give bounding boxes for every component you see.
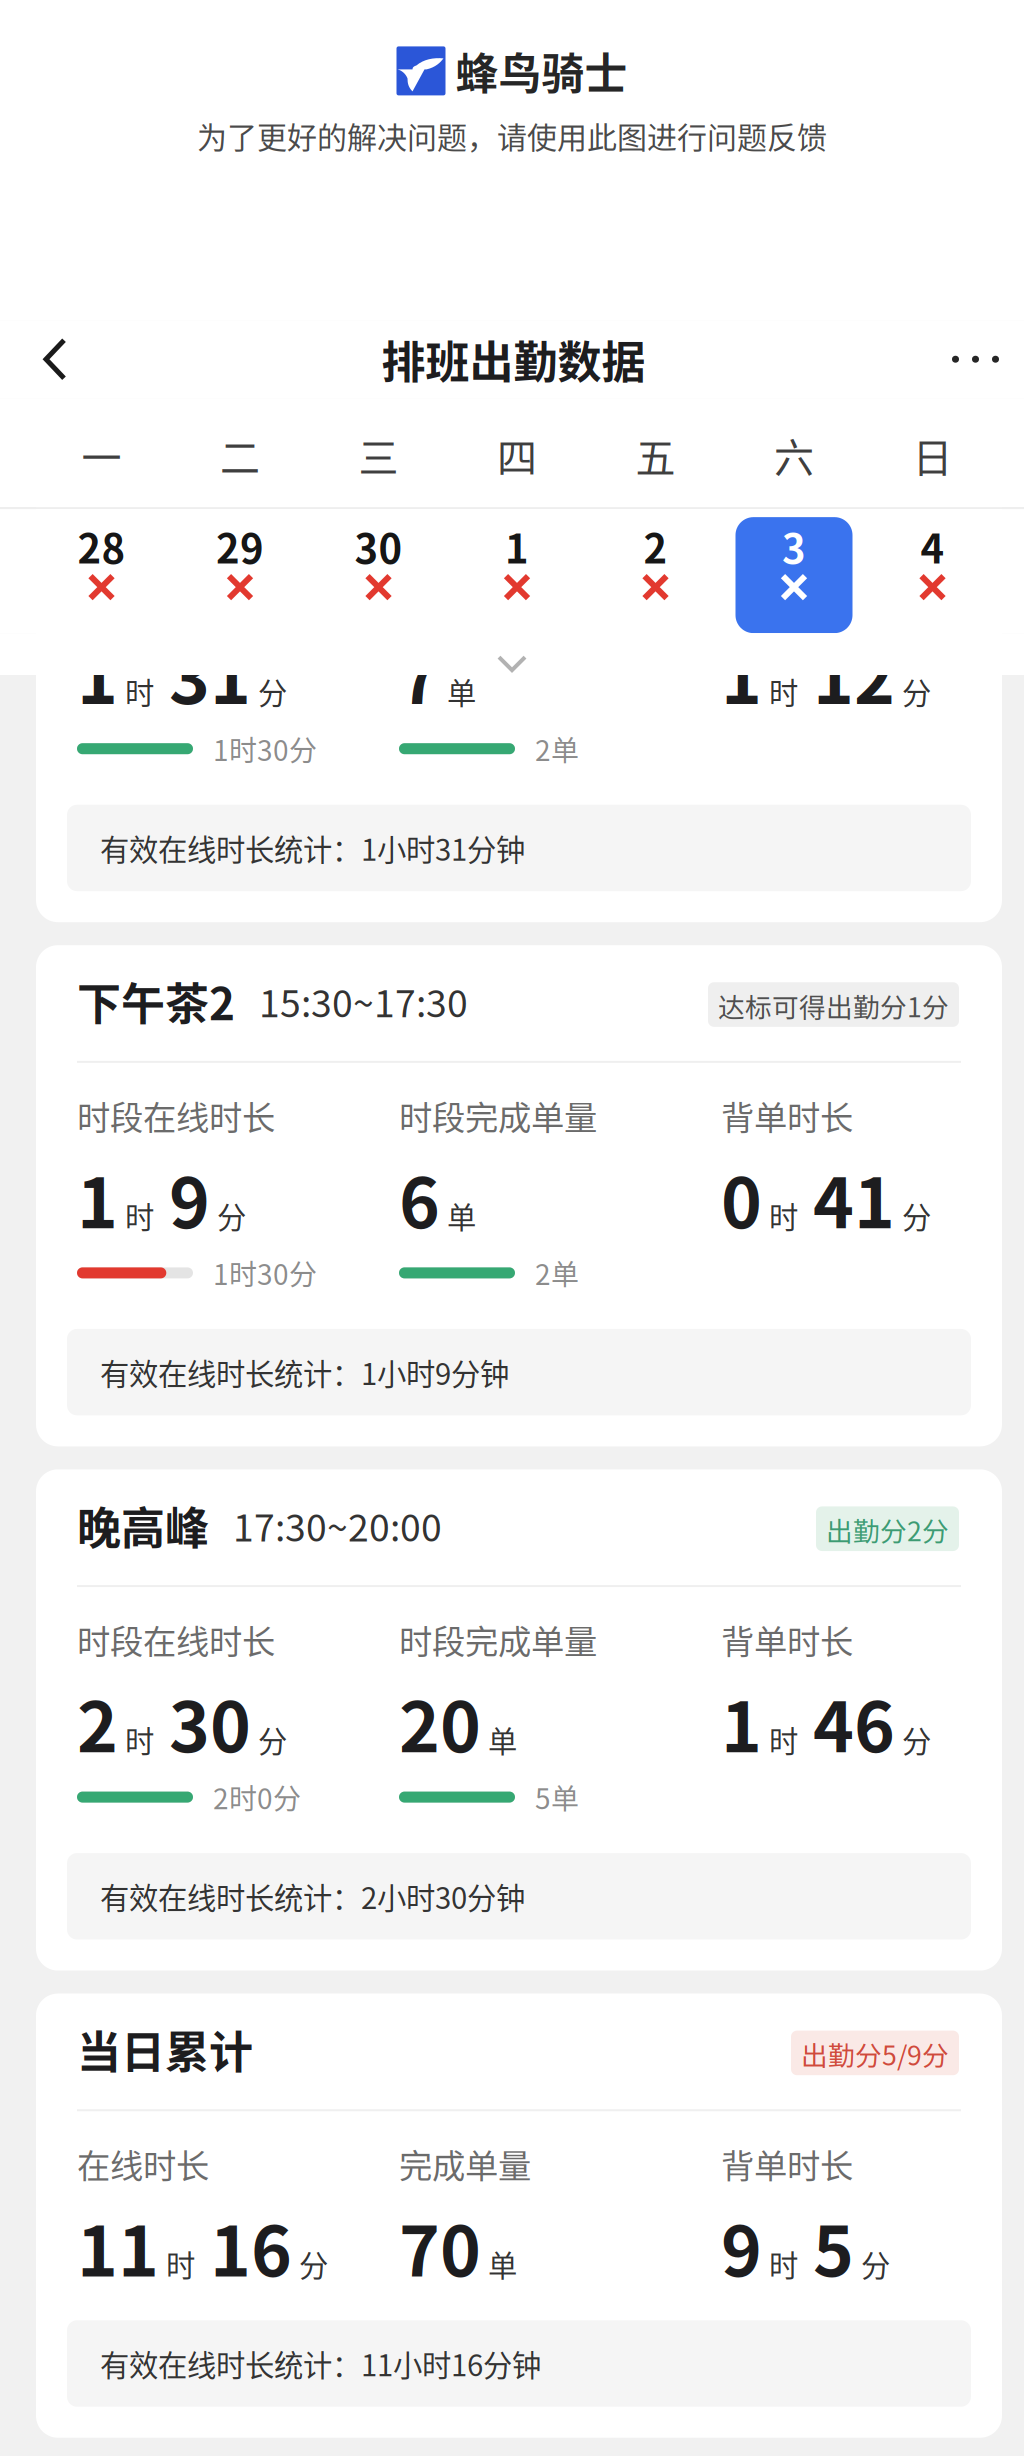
staticText: 15:30~17:30 (235, 974, 468, 1028)
staticText: 排班出勤数据 (381, 327, 645, 391)
staticText: 晚高峰 (77, 1493, 209, 1557)
staticText: 有效在线时长统计：1小时9分钟 (100, 1351, 509, 1393)
staticText: 07:00~09:00 (209, 450, 442, 504)
staticText: 20 (399, 1672, 481, 1772)
staticText: 29 (216, 517, 264, 575)
staticText: 17:30~20:00 (209, 1498, 442, 1552)
button[interactable]: Back (0, 320, 96, 398)
staticText: 为了更好的解决问题，请使用此图进行问题反馈 (197, 114, 827, 157)
staticText: 7 (399, 623, 440, 724)
staticText: 四 (497, 426, 537, 484)
staticText: 2 (77, 1672, 118, 1772)
staticText: 时段完成单量 (399, 567, 597, 615)
staticText: 6 (399, 1148, 440, 1248)
staticText: 三 (358, 426, 398, 484)
staticText: 时段在线时长 (77, 567, 275, 615)
staticText: 1时30分 (213, 1253, 317, 1293)
staticText: 分 (861, 2242, 890, 2285)
button[interactable]: 3 (735, 517, 852, 633)
staticText: 单 (488, 1718, 517, 1761)
button[interactable]: 4 (874, 517, 991, 633)
staticText: 出勤分1分 (826, 462, 949, 501)
staticText: 时 (125, 1194, 154, 1237)
staticText: 分 (902, 670, 931, 712)
staticText: 分 (258, 670, 287, 712)
staticText: 时段在线时长 (77, 1091, 275, 1140)
staticText: 2 (643, 517, 667, 575)
staticText: 1时30分 (213, 728, 317, 769)
button[interactable]: Expand calendar (0, 633, 1024, 676)
staticText: 时 (769, 1718, 798, 1761)
staticText: 时 (125, 1718, 154, 1761)
staticText: 单 (447, 670, 476, 712)
staticText: 时 (769, 1194, 798, 1237)
staticText: 分 (217, 1194, 246, 1237)
button[interactable]: 2 (597, 517, 714, 633)
staticText: 当日累计 (77, 2018, 253, 2081)
staticText: 时段完成单量 (399, 1091, 597, 1140)
staticText: 46 (813, 1672, 895, 1772)
staticText: 70 (399, 2196, 481, 2296)
staticText: 日 (912, 426, 952, 484)
staticText: 2时0分 (213, 1777, 301, 1817)
staticText: 时 (769, 2242, 798, 2285)
staticText: 0 (721, 1148, 762, 1248)
staticText: 30 (354, 517, 402, 575)
staticText: 时段在线时长 (77, 1615, 275, 1664)
staticText: 4 (920, 517, 944, 575)
staticText: 11 (77, 2196, 159, 2296)
staticText: 时 (166, 2242, 195, 2285)
staticText: 16 (210, 2196, 292, 2296)
staticText: 2单 (535, 1253, 579, 1293)
staticText: 1 (721, 1672, 762, 1772)
staticText: 1 (77, 1148, 118, 1248)
staticText: 分 (258, 1718, 287, 1761)
staticText: 31 (169, 623, 251, 724)
button[interactable]: 28 (43, 517, 160, 633)
staticText: 分 (299, 2242, 328, 2285)
staticText: 41 (813, 1148, 895, 1248)
staticText: 蜂鸟骑士 (455, 40, 627, 102)
staticText: 分 (902, 1194, 931, 1237)
staticText: 单 (488, 2242, 517, 2285)
staticText: 1 (505, 517, 529, 575)
staticText: 背单时长 (721, 1091, 853, 1140)
staticText: 2单 (535, 728, 579, 769)
staticText: 出勤分5/9分 (801, 2035, 949, 2073)
staticText: 在线时长 (77, 2140, 209, 2188)
button[interactable]: 30 (320, 517, 437, 633)
staticText: 背单时长 (721, 1615, 853, 1664)
staticText: 1 (721, 623, 762, 724)
staticText: 28 (77, 517, 125, 575)
staticText: 5 (813, 2196, 854, 2296)
staticText: 分 (902, 1718, 931, 1761)
staticText: 9 (169, 1148, 210, 1248)
staticText: 30 (169, 1672, 251, 1772)
staticText: 有效在线时长统计：11小时16分钟 (100, 2342, 541, 2385)
staticText: 有效在线时长统计：1小时31分钟 (100, 827, 525, 869)
staticText: 9 (721, 2196, 762, 2296)
button[interactable]: 1 (458, 517, 575, 633)
staticText: 有效在线时长统计：2小时30分钟 (100, 1875, 525, 1918)
staticText: 12 (813, 623, 895, 724)
staticText: 时段完成单量 (399, 1615, 597, 1664)
button[interactable]: 29 (181, 517, 298, 633)
staticText: 时 (125, 670, 154, 712)
staticText: 5单 (535, 1777, 579, 1817)
staticText: 单 (447, 1194, 476, 1237)
button[interactable]: More (931, 320, 1024, 398)
staticText: 下午茶2 (77, 969, 235, 1033)
staticText: 完成单量 (399, 2140, 531, 2188)
staticText: 出勤分2分 (826, 1510, 949, 1549)
staticText: 3 (782, 517, 806, 575)
staticText: 一 (81, 426, 121, 484)
staticText: 早高峰 (77, 445, 209, 509)
staticText: 五 (635, 426, 675, 484)
staticText: 二 (220, 426, 260, 484)
staticText: 背单时长 (721, 567, 853, 615)
staticText: 达标可得出勤分1分 (718, 986, 949, 1025)
staticText: 时 (769, 670, 798, 712)
staticText: 六 (774, 426, 814, 484)
staticText: 背单时长 (721, 2140, 853, 2188)
staticText: 1 (77, 623, 118, 724)
